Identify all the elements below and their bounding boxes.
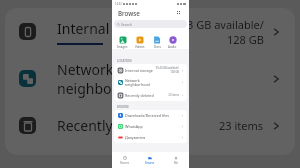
staticText: Документы [125,135,146,140]
button[interactable]: Network [19,55,283,102]
staticText: WhatsApp [125,124,143,129]
button[interactable]: Internal s [19,8,283,55]
button[interactable]: Документы [118,132,184,143]
staticText: Recently deleted [125,93,154,98]
staticText: 23 items [219,118,264,133]
staticText: 23 items [168,93,179,97]
staticText: Me [174,161,178,165]
staticText: Browse [118,9,140,17]
staticText: 14:32 [115,2,122,6]
staticText: 128 GB [227,32,264,47]
staticText: Recent [120,161,129,165]
staticText: Recently [57,116,113,135]
button[interactable]: Docs [153,36,161,49]
staticText: Internal s [57,19,120,38]
staticText: Downloads/Received files [125,113,170,118]
button[interactable]: Videos [135,36,145,49]
staticText: Search [121,22,132,27]
staticText: LOCATION [117,59,132,63]
staticText: 3 GB available/ [187,17,264,32]
staticText: Docs [154,45,161,49]
staticText: neighbor [57,79,118,98]
staticText: Network [57,60,114,79]
staticText: Audio [168,45,177,49]
staticText: Internal storage [125,68,153,73]
button[interactable]: Images [117,36,128,49]
staticText: Browse [145,161,155,165]
button[interactable]: Me [163,152,189,168]
staticText: Images [117,45,128,49]
button[interactable]: Search [114,20,187,28]
button[interactable]: Grid view [175,9,182,16]
button[interactable]: Recently [19,102,283,149]
button[interactable]: WhatsApp [118,121,184,132]
button[interactable]: Recent [112,152,137,168]
staticText: BROWSE [117,105,129,109]
button[interactable]: Audio [168,36,177,49]
staticText: Videos [135,45,145,49]
button[interactable]: Internal storage [118,64,184,76]
button[interactable]: Recently deleted [118,89,184,101]
staticText: Network neighborhood [125,78,150,87]
staticText: 93.43 GB available/ 128 GB [155,66,179,74]
button[interactable]: Network neighborhood [118,76,184,89]
button[interactable]: Downloads/Received files [118,110,184,121]
button[interactable]: Browse [137,152,163,168]
